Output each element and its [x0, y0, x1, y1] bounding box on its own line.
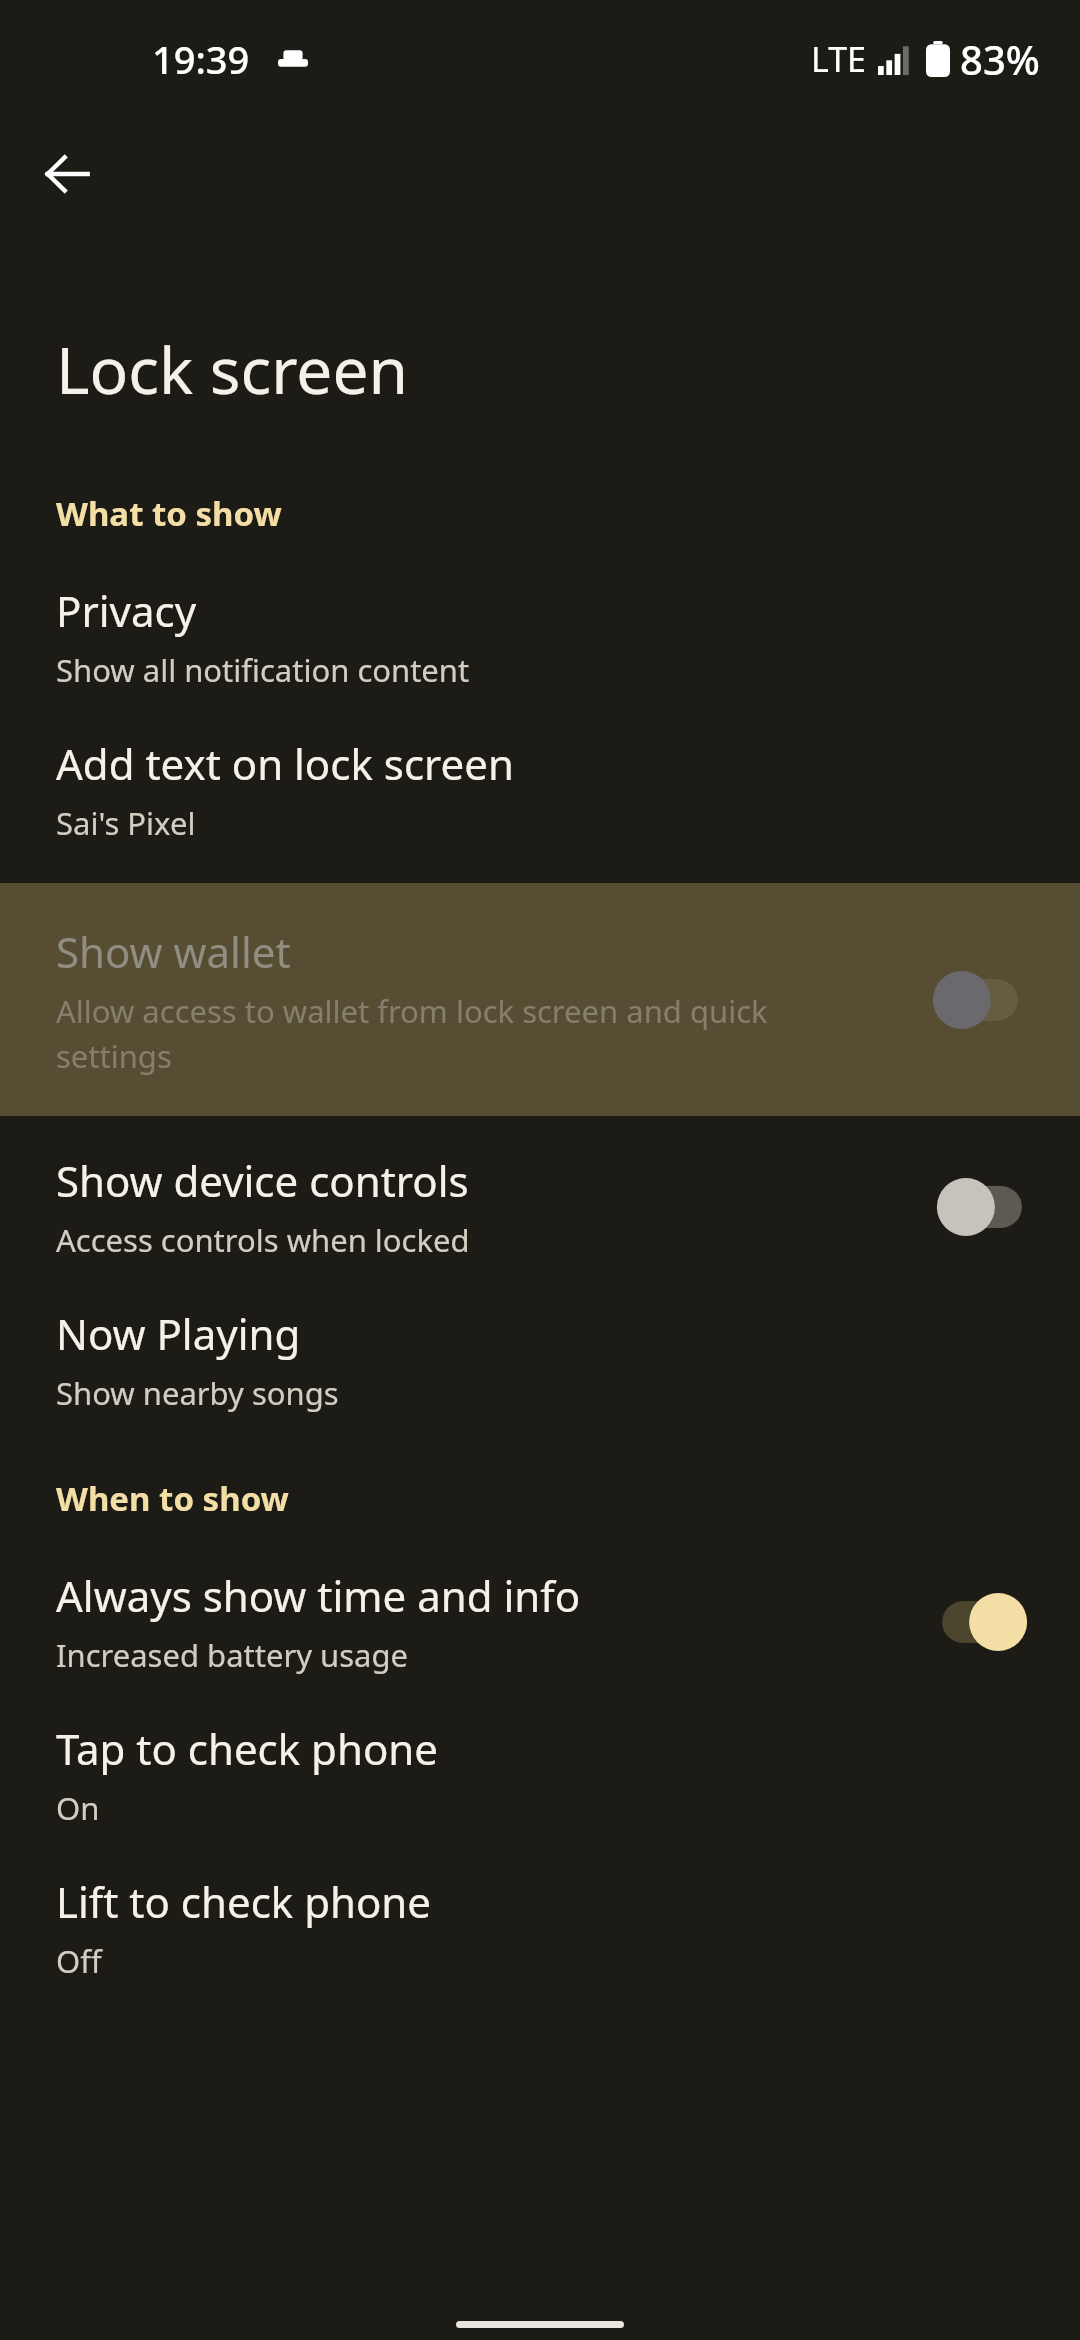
staticText: When to show [56, 1476, 289, 1521]
staticText: Access controls when locked [56, 1219, 470, 1261]
button[interactable]: Now Playing [0, 1305, 1080, 1414]
staticText: Tap to check phone [56, 1720, 438, 1777]
staticText: Show all notification content [56, 649, 470, 691]
staticText: 83% [960, 32, 1040, 86]
button[interactable]: Add text on lock screen [0, 735, 1080, 844]
button[interactable]: Show device controls [0, 1152, 1080, 1261]
button[interactable]: Show wallet [0, 883, 1080, 1116]
staticText: Sai's Pixel [56, 802, 196, 844]
button[interactable]: Always show time and info [0, 1567, 1080, 1676]
staticText: Show wallet [56, 923, 291, 980]
staticText: Allow access to wallet from lock screen … [56, 990, 880, 1077]
staticText: Now Playing [56, 1305, 301, 1362]
staticText: Show device controls [56, 1152, 469, 1209]
button[interactable]: Toggle on [940, 1593, 1024, 1651]
staticText: Off [56, 1940, 102, 1982]
staticText: Lock screen [56, 326, 409, 413]
staticText: Privacy [56, 582, 197, 639]
staticText: Increased battery usage [56, 1634, 409, 1676]
staticText: Lift to check phone [56, 1873, 432, 1930]
staticText: 19:39 [152, 33, 250, 85]
staticText: LTE [811, 36, 866, 82]
button[interactable]: Toggle off [940, 1178, 1024, 1236]
button[interactable]: Back [26, 133, 108, 215]
staticText: On [56, 1787, 100, 1829]
staticText: Add text on lock screen [56, 735, 514, 792]
staticText: What to show [56, 491, 282, 536]
button[interactable]: Toggle off [936, 971, 1020, 1029]
button[interactable]: Tap to check phone [0, 1720, 1080, 1829]
staticText: Show nearby songs [56, 1372, 339, 1414]
button[interactable]: Lift to check phone [0, 1873, 1080, 1982]
staticText: Always show time and info [56, 1567, 581, 1624]
button[interactable]: Privacy [0, 582, 1080, 691]
